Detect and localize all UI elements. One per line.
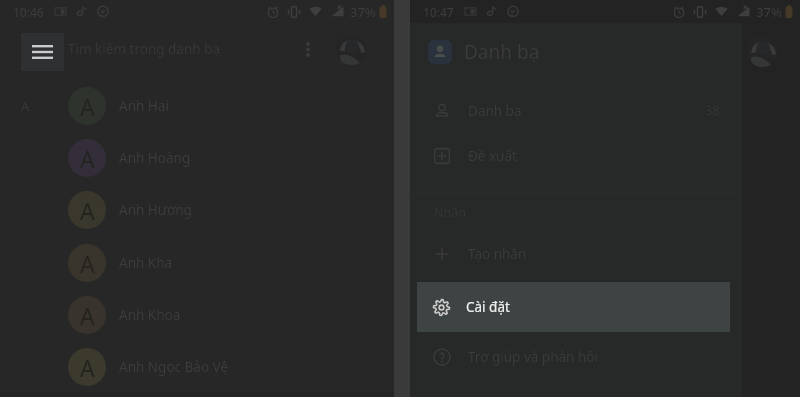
staticText: 10:46 <box>13 4 44 20</box>
staticText: A <box>80 248 95 279</box>
staticText: Trợ giúp và phản hồi <box>468 348 598 366</box>
staticText: Anh Hoàng <box>119 149 191 167</box>
staticText: Anh Hai <box>119 97 169 115</box>
staticText: 37% <box>756 3 782 21</box>
staticText: Anh Kha <box>119 254 173 272</box>
button[interactable]: Cài đặt <box>410 285 742 330</box>
staticText: 38 <box>705 102 720 119</box>
staticText: Cài đặt <box>468 299 512 317</box>
staticText: Tìm kiếm trong danh bạ <box>68 40 221 58</box>
button[interactable]: Account <box>336 34 367 65</box>
staticText: Anh Khoa <box>119 306 181 324</box>
staticText: Danh bạ <box>464 39 540 65</box>
staticText: 37% <box>350 3 376 21</box>
button[interactable]: More options <box>292 33 324 65</box>
staticText: A <box>80 195 95 226</box>
staticText: 10:47 <box>423 4 454 20</box>
staticText: Tạo nhãn <box>468 245 527 263</box>
button[interactable]: A <box>0 341 394 393</box>
staticText: Anh Ngọc Bảo Vệ <box>119 358 229 376</box>
button[interactable]: A <box>0 289 394 341</box>
staticText: Danh bạ <box>468 102 522 120</box>
button[interactable]: Danh bạ <box>410 26 742 78</box>
staticText: A <box>80 91 95 122</box>
staticText: Cài đặt <box>466 298 510 316</box>
staticText: Nhãn <box>434 204 466 221</box>
button[interactable]: A <box>0 184 394 236</box>
staticText: A <box>80 143 95 174</box>
button[interactable]: A <box>0 237 394 289</box>
staticText: Đề xuất <box>468 147 517 165</box>
button[interactable]: A <box>0 132 394 184</box>
staticText: A <box>21 97 30 115</box>
button[interactable]: Open navigation drawer <box>21 33 64 71</box>
staticText: A <box>80 300 95 331</box>
staticText: Anh Hương <box>119 201 192 219</box>
button[interactable]: Cài đặt <box>417 282 730 332</box>
staticText: A <box>80 352 95 383</box>
